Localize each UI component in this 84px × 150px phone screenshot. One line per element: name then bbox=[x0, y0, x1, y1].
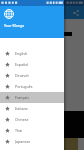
button[interactable]: Thai bbox=[0, 125, 64, 136]
staticText: Français bbox=[15, 95, 29, 100]
staticText: Chinese bbox=[15, 117, 29, 122]
button[interactable]: Chinese bbox=[0, 114, 64, 125]
button[interactable]: Italiano bbox=[0, 103, 64, 114]
staticText: English bbox=[15, 51, 28, 56]
button[interactable]: Share bbox=[70, 7, 82, 19]
staticText: Deutsch bbox=[15, 73, 29, 78]
button[interactable]: Français bbox=[0, 92, 64, 103]
button[interactable]: Japanese bbox=[0, 136, 64, 147]
staticText: Português bbox=[15, 84, 33, 89]
button[interactable]: English bbox=[0, 48, 64, 59]
staticText: Italiano bbox=[15, 106, 28, 111]
staticText: Español bbox=[15, 62, 29, 67]
button[interactable]: Español bbox=[0, 59, 64, 70]
button[interactable]: Português bbox=[0, 81, 64, 92]
staticText: Thai bbox=[15, 128, 23, 133]
button[interactable]: Deutsch bbox=[0, 70, 64, 81]
staticText: Your Manga bbox=[4, 23, 25, 28]
staticText: Japanese bbox=[15, 139, 31, 144]
